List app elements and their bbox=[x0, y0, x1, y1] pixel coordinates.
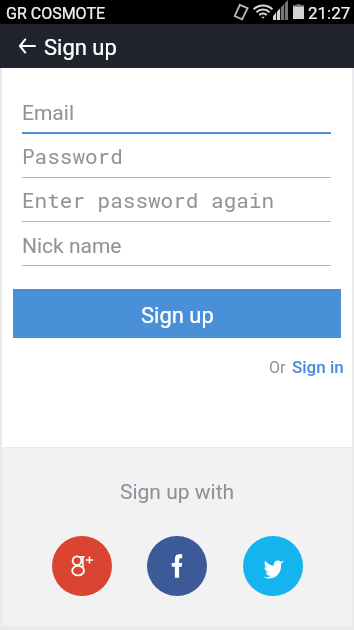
button[interactable]: Sign in bbox=[292, 357, 344, 377]
button[interactable]: Back bbox=[9, 28, 45, 64]
button[interactable]: Sign up with Facebook bbox=[147, 536, 207, 596]
staticText: Sign up bbox=[44, 35, 117, 61]
staticText: GR COSMOTE bbox=[6, 4, 106, 23]
staticText: Sign in bbox=[292, 357, 344, 377]
button[interactable]: Sign up bbox=[13, 289, 341, 338]
staticText: 21:27 bbox=[308, 3, 351, 23]
staticText: Password bbox=[22, 142, 123, 170]
staticText: Enter password again bbox=[22, 186, 275, 214]
button[interactable]: Sign up with Google Plus bbox=[52, 536, 112, 596]
staticText: Or bbox=[269, 358, 286, 377]
staticText: Sign up with bbox=[120, 480, 235, 505]
staticText: Sign up bbox=[141, 303, 214, 329]
staticText: Nick name bbox=[22, 234, 122, 259]
staticText: Email bbox=[22, 101, 74, 126]
button[interactable]: Sign up with Twitter bbox=[243, 536, 303, 596]
